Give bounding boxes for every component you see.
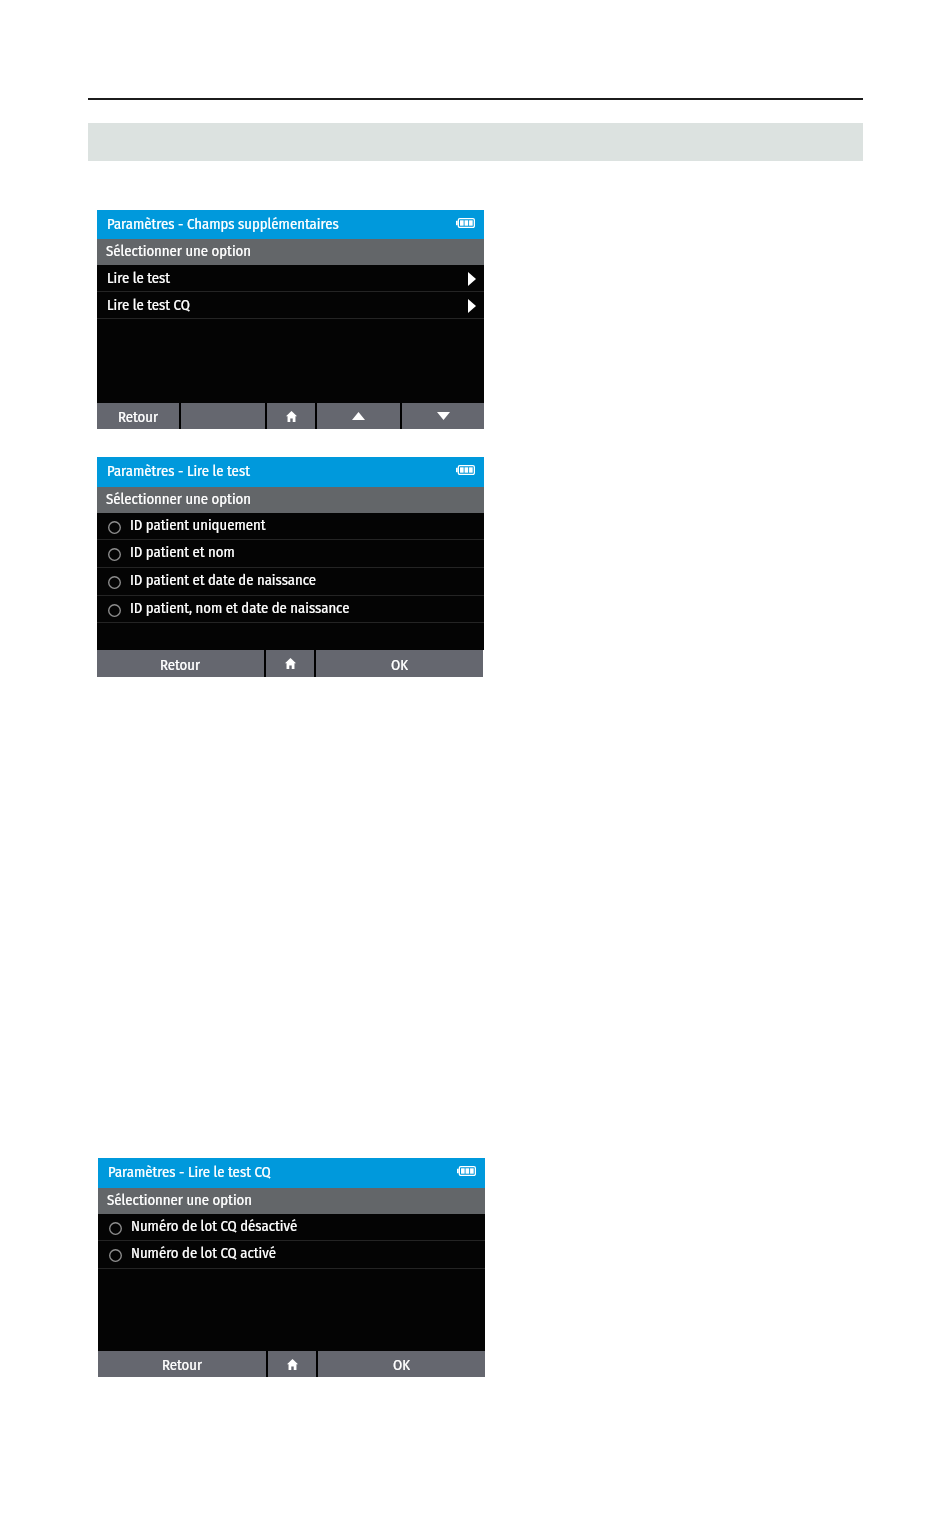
staticText: Retour — [160, 656, 201, 674]
staticText: OK — [391, 656, 408, 674]
staticText: ID patient et date de naissance — [130, 571, 317, 589]
button[interactable]: Retour — [97, 650, 264, 677]
button[interactable]: ID patient et nom — [97, 540, 484, 568]
staticText: Lire le test — [107, 269, 171, 287]
button[interactable]: OK — [318, 1351, 485, 1377]
button[interactable]: Scroll up — [317, 403, 400, 429]
staticText: OK — [393, 1356, 410, 1374]
button[interactable]: Scroll down — [402, 403, 484, 429]
button[interactable]: Numéro de lot CQ activé — [98, 1241, 485, 1269]
staticText: Retour — [118, 408, 159, 426]
button[interactable]: Retour — [98, 1351, 266, 1377]
button[interactable]: Home — [267, 403, 315, 429]
staticText: Sélectionner une option — [106, 490, 252, 508]
button[interactable]: ID patient uniquement — [97, 513, 484, 540]
button[interactable]: ID patient, nom et date de naissance — [97, 596, 484, 623]
staticText: Sélectionner une option — [106, 242, 252, 260]
button[interactable]: ID patient et date de naissance — [97, 568, 484, 596]
staticText: ID patient, nom et date de naissance — [130, 599, 350, 617]
staticText: Lire le test CQ — [107, 296, 190, 314]
staticText: Paramètres - Lire le test CQ — [108, 1163, 457, 1181]
staticText: Paramètres - Champs supplémentaires — [107, 215, 456, 233]
staticText: ID patient et nom — [130, 543, 235, 561]
staticText: Paramètres - Lire le test — [107, 462, 456, 480]
button[interactable]: Lire le test — [97, 265, 484, 292]
button[interactable]: OK — [316, 650, 483, 677]
staticText: ID patient uniquement — [130, 516, 266, 534]
button[interactable]: Lire le test CQ — [97, 292, 484, 319]
button[interactable]: Home — [268, 1351, 316, 1377]
button[interactable]: Numéro de lot CQ désactivé — [98, 1214, 485, 1241]
staticText: Numéro de lot CQ désactivé — [131, 1217, 298, 1235]
staticText: Sélectionner une option — [107, 1191, 253, 1209]
staticText: Retour — [162, 1356, 203, 1374]
button[interactable]: Home — [266, 650, 314, 677]
button[interactable]: Retour — [97, 403, 179, 429]
staticText: Numéro de lot CQ activé — [131, 1244, 276, 1262]
